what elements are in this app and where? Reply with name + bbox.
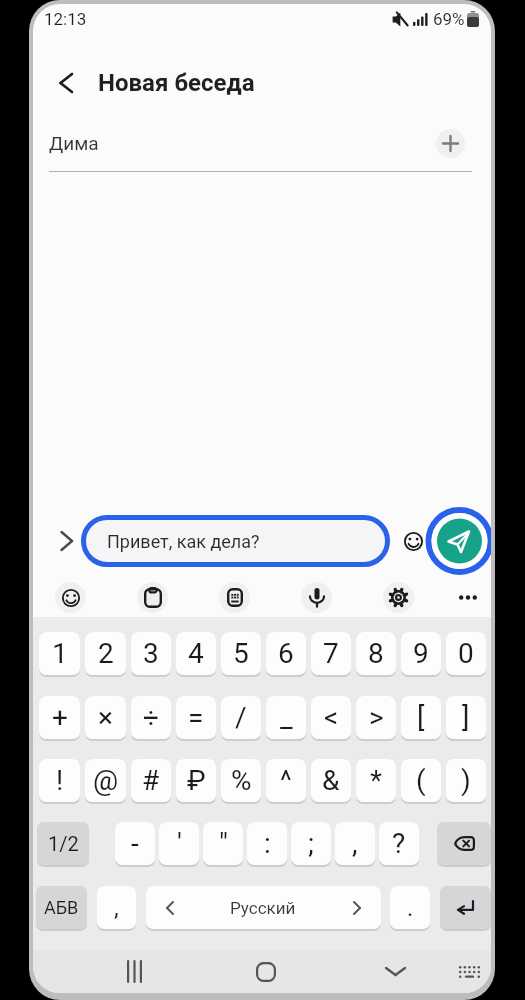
button[interactable]: # xyxy=(131,759,171,802)
button[interactable]: = xyxy=(176,696,216,739)
button[interactable]: 0 xyxy=(446,632,486,675)
staticText: 3 xyxy=(143,637,159,670)
staticText: _ xyxy=(280,701,293,734)
button[interactable] xyxy=(383,582,414,613)
button[interactable] xyxy=(250,956,281,987)
staticText: 69% xyxy=(433,9,465,29)
staticText: Русский xyxy=(230,898,296,918)
staticText: 0 xyxy=(458,637,474,670)
staticText: × xyxy=(98,701,113,734)
staticText: 1 xyxy=(52,637,68,670)
staticText: ÷ xyxy=(143,701,159,734)
staticText: ^ xyxy=(280,764,292,797)
staticText: ? xyxy=(392,827,406,860)
button[interactable]: ^ xyxy=(266,759,306,802)
button[interactable] xyxy=(456,958,483,985)
button[interactable]: 2 xyxy=(85,632,126,675)
staticText: 7 xyxy=(323,637,339,670)
button[interactable]: 4 xyxy=(176,632,216,675)
staticText: 2 xyxy=(98,637,114,670)
button[interactable]: 1 xyxy=(39,632,80,675)
staticText: * xyxy=(370,764,383,797)
button[interactable]: 6 xyxy=(266,632,306,675)
button[interactable] xyxy=(56,530,78,552)
staticText: Дима xyxy=(49,132,99,154)
button[interactable] xyxy=(219,582,250,613)
button[interactable]: & xyxy=(311,759,351,802)
button[interactable]: АБВ xyxy=(36,886,87,929)
button[interactable]: , xyxy=(97,886,136,929)
staticText: / xyxy=(235,701,247,734)
button[interactable] xyxy=(55,582,86,613)
button[interactable]: * xyxy=(356,759,396,802)
button[interactable]: . xyxy=(390,886,430,929)
button[interactable] xyxy=(437,822,491,865)
button[interactable]: , xyxy=(335,822,375,865)
button[interactable]: ( xyxy=(401,759,441,802)
button[interactable]: [ xyxy=(401,696,441,739)
button[interactable]: × xyxy=(85,696,126,739)
button[interactable]: ₽ xyxy=(176,759,216,802)
button[interactable]: " xyxy=(203,822,243,865)
staticText: [ xyxy=(417,701,425,734)
staticText: АБВ xyxy=(44,897,79,918)
button[interactable]: > xyxy=(356,696,396,739)
staticText: Новая беседа xyxy=(98,69,255,97)
button[interactable]: ? xyxy=(379,822,419,865)
button[interactable]: ! xyxy=(39,759,80,802)
staticText: ) xyxy=(461,764,471,797)
button[interactable]: + xyxy=(39,696,80,739)
staticText: < xyxy=(324,701,339,734)
button[interactable]: 7 xyxy=(311,632,351,675)
staticText: . xyxy=(407,894,414,922)
staticText: + xyxy=(52,701,68,734)
button[interactable]: ) xyxy=(446,759,486,802)
button[interactable]: ] xyxy=(446,696,486,739)
staticText: 8 xyxy=(368,637,384,670)
button[interactable]: - xyxy=(115,822,155,865)
button[interactable]: % xyxy=(221,759,261,802)
staticText: & xyxy=(322,764,340,797)
button[interactable]: < xyxy=(311,696,351,739)
staticText: Привет, как дела? xyxy=(107,531,260,552)
button[interactable] xyxy=(440,886,491,929)
button[interactable] xyxy=(380,956,411,987)
button[interactable]: _ xyxy=(266,696,306,739)
button[interactable]: 3 xyxy=(131,632,171,675)
button[interactable]: ; xyxy=(291,822,331,865)
button[interactable]: 9 xyxy=(401,632,441,675)
staticText: 9 xyxy=(413,637,429,670)
button[interactable]: Привет, как дела? xyxy=(81,515,390,567)
staticText: ] xyxy=(462,701,470,734)
staticText: 12:13 xyxy=(44,9,87,29)
staticText: ' xyxy=(177,827,182,860)
staticText: % xyxy=(231,764,252,797)
staticText: , xyxy=(352,827,358,860)
button[interactable] xyxy=(137,582,168,613)
button[interactable] xyxy=(428,512,491,570)
button[interactable] xyxy=(455,584,481,610)
staticText: : xyxy=(264,827,271,860)
staticText: ₽ xyxy=(187,764,206,797)
button[interactable]: @ xyxy=(85,759,126,802)
staticText: 4 xyxy=(188,637,204,670)
button[interactable]: ' xyxy=(159,822,199,865)
button[interactable]: ÷ xyxy=(131,696,171,739)
staticText: " xyxy=(219,827,228,860)
button[interactable] xyxy=(436,129,465,158)
staticText: 1/2 xyxy=(48,832,79,855)
button[interactable]: 8 xyxy=(356,632,396,675)
button[interactable]: Русский xyxy=(146,886,381,929)
button[interactable]: 1/2 xyxy=(37,822,89,865)
staticText: ! xyxy=(56,764,64,797)
button[interactable]: : xyxy=(247,822,287,865)
staticText: 5 xyxy=(233,637,249,670)
button[interactable] xyxy=(44,62,86,104)
staticText: = xyxy=(188,701,204,734)
button[interactable] xyxy=(301,582,332,613)
button[interactable]: 5 xyxy=(221,632,261,675)
button[interactable] xyxy=(119,956,150,987)
button[interactable]: / xyxy=(221,696,261,739)
staticText: > xyxy=(369,701,384,734)
button[interactable] xyxy=(402,530,424,552)
